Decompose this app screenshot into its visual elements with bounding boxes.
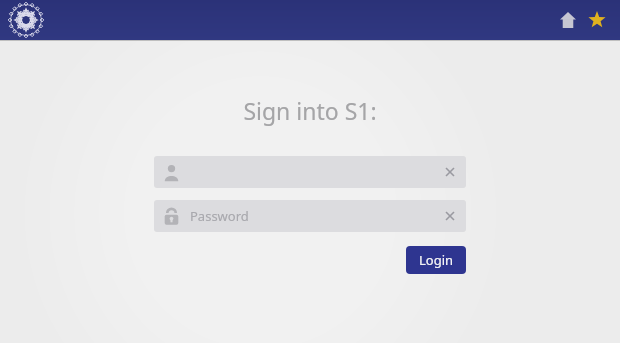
staticText: Password bbox=[190, 207, 249, 225]
staticText: Sign into S1: bbox=[0, 95, 620, 126]
button[interactable]: Favorites bbox=[584, 7, 610, 33]
button[interactable]: Password bbox=[154, 200, 466, 232]
button[interactable]: Login bbox=[406, 246, 466, 274]
button[interactable]: Clear Username bbox=[440, 162, 460, 182]
button[interactable]: Logo bbox=[9, 3, 43, 37]
button[interactable]: Clear Password bbox=[440, 206, 460, 226]
staticText: Login bbox=[419, 251, 454, 269]
button[interactable]: Home bbox=[555, 7, 581, 33]
button[interactable]: Clear Username bbox=[154, 156, 466, 188]
